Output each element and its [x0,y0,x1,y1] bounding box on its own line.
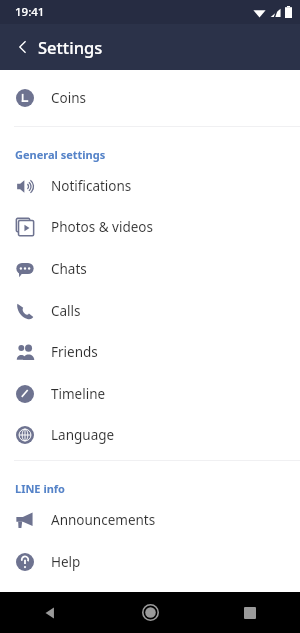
button[interactable]: Home [100,592,200,633]
staticText: General settings [15,147,106,162]
staticText: Timeline [51,385,106,403]
button[interactable]: Timeline [0,373,300,414]
button[interactable]: Coins [0,77,300,119]
button[interactable]: Recent apps [200,592,300,633]
staticText: Chats [51,260,87,278]
button[interactable]: Help [0,541,300,583]
staticText: Announcements [51,511,156,529]
staticText: Coins [51,89,86,107]
staticText: Settings [38,36,103,58]
button[interactable]: Back [0,592,100,633]
staticText: Friends [51,343,98,361]
staticText: LINE info [15,481,65,496]
button[interactable]: Friends [0,331,300,373]
staticText: Photos & videos [51,218,153,236]
staticText: Help [51,553,81,571]
button[interactable]: Chats [0,248,300,290]
staticText: Notifications [51,177,132,195]
staticText: Calls [51,302,81,320]
button[interactable]: Announcements [0,499,300,541]
button[interactable]: Notifications [0,165,300,206]
button[interactable]: Photos & videos [0,206,300,248]
button[interactable]: Calls [0,290,300,331]
staticText: 19:41 [15,4,45,20]
button[interactable]: Back [6,30,40,64]
staticText: Language [51,426,115,444]
button[interactable]: Language [0,414,300,456]
